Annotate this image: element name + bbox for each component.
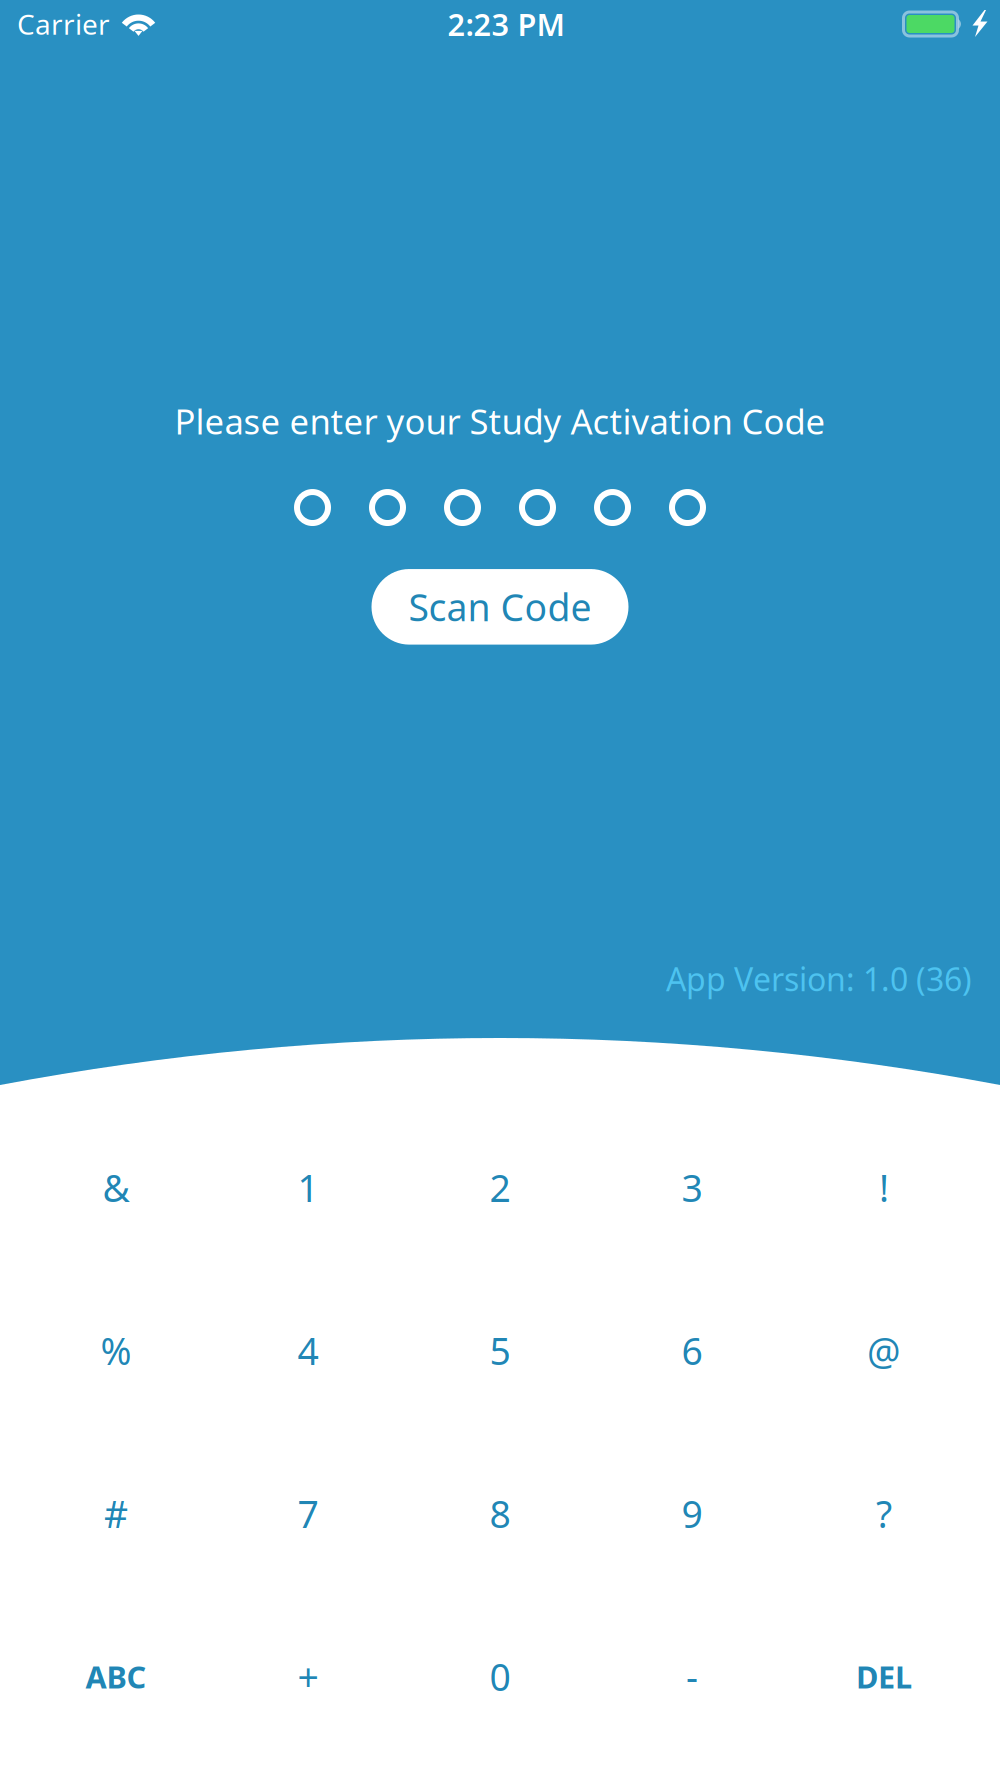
button[interactable]: - [596,1595,788,1758]
staticText: 4 [297,1326,318,1375]
staticText: # [104,1489,128,1538]
button[interactable]: 4 [212,1269,404,1432]
button[interactable]: ? [788,1432,980,1595]
button[interactable]: Letters keyboard [20,1595,212,1758]
button[interactable]: % [20,1269,212,1432]
button[interactable]: 1 [212,1106,404,1269]
staticText: + [297,1652,318,1701]
staticText: & [102,1163,129,1212]
button[interactable]: ! [788,1106,980,1269]
button[interactable]: 0 [404,1595,596,1758]
staticText: DEL [856,1656,912,1697]
staticText: Carrier [17,5,110,43]
staticText: 6 [681,1326,702,1375]
staticText: App Version: 1.0 (36) [666,957,972,1000]
button[interactable]: & [20,1106,212,1269]
staticText: - [686,1652,698,1701]
staticText: Please enter your Study Activation Code [174,398,825,444]
button[interactable]: @ [788,1269,980,1432]
button[interactable]: Scan Code [371,569,628,645]
button[interactable]: 3 [596,1106,788,1269]
staticText: @ [867,1326,901,1375]
button[interactable]: 6 [596,1269,788,1432]
staticText: 2 [489,1163,510,1212]
button[interactable]: Delete [788,1595,980,1758]
staticText: 2:23 PM [447,4,564,44]
staticText: ABC [85,1656,146,1697]
staticText: 9 [681,1489,702,1538]
staticText: 3 [681,1163,702,1212]
staticText: 7 [297,1489,318,1538]
button[interactable]: # [20,1432,212,1595]
staticText: Scan Code [408,582,591,632]
staticText: 8 [489,1489,510,1538]
staticText: ! [879,1163,889,1212]
button[interactable]: 2 [404,1106,596,1269]
button[interactable]: 9 [596,1432,788,1595]
staticText: 5 [489,1326,510,1375]
staticText: 1 [297,1163,318,1212]
button[interactable]: 8 [404,1432,596,1595]
staticText: % [100,1326,131,1375]
staticText: 0 [489,1652,510,1701]
button[interactable]: 5 [404,1269,596,1432]
button[interactable]: 7 [212,1432,404,1595]
button[interactable]: + [212,1595,404,1758]
staticText: ? [876,1489,892,1538]
